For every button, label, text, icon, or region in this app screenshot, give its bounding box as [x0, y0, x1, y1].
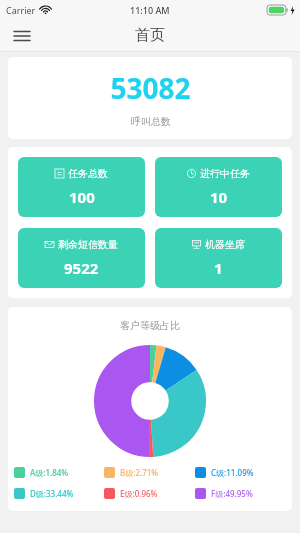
staticText: 1 [214, 258, 223, 278]
button[interactable]: 剩余短信数量 [18, 228, 145, 288]
button[interactable]: D级:33.44% [14, 488, 104, 499]
staticText: 呼叫总数 [131, 115, 171, 128]
staticText: 11:10 AM [130, 4, 170, 16]
button[interactable]: B级:2.71% [104, 467, 195, 478]
button[interactable]: C级:11.09% [195, 467, 286, 478]
staticText: A级:1.84% [30, 467, 69, 478]
staticText: 任务总数 [68, 167, 108, 180]
staticText: 客户等级占比 [120, 319, 180, 332]
button[interactable]: Menu [8, 22, 36, 50]
staticText: 剩余短信数量 [58, 238, 118, 251]
staticText: Carrier [6, 4, 36, 16]
staticText: C级:11.09% [211, 467, 254, 478]
staticText: 100 [69, 187, 95, 207]
staticText: 进行中任务 [200, 167, 250, 180]
staticText: 53082 [110, 69, 191, 107]
button[interactable]: A级:1.84% [14, 467, 104, 478]
button[interactable]: 进行中任务 [155, 157, 282, 217]
button[interactable]: E级:0.96% [104, 488, 195, 499]
staticText: 9522 [64, 258, 99, 278]
button[interactable]: F级:49.95% [195, 488, 286, 499]
staticText: F级:49.95% [211, 488, 253, 499]
button[interactable]: 机器坐席 [155, 228, 282, 288]
button[interactable]: 任务总数 [18, 157, 145, 217]
staticText: 10 [210, 187, 228, 207]
staticText: 首页 [135, 26, 165, 45]
staticText: D级:33.44% [30, 488, 74, 499]
staticText: 机器坐席 [205, 238, 245, 251]
staticText: E级:0.96% [120, 488, 158, 499]
button[interactable]: 53082 [8, 57, 292, 139]
staticText: B级:2.71% [120, 467, 159, 478]
